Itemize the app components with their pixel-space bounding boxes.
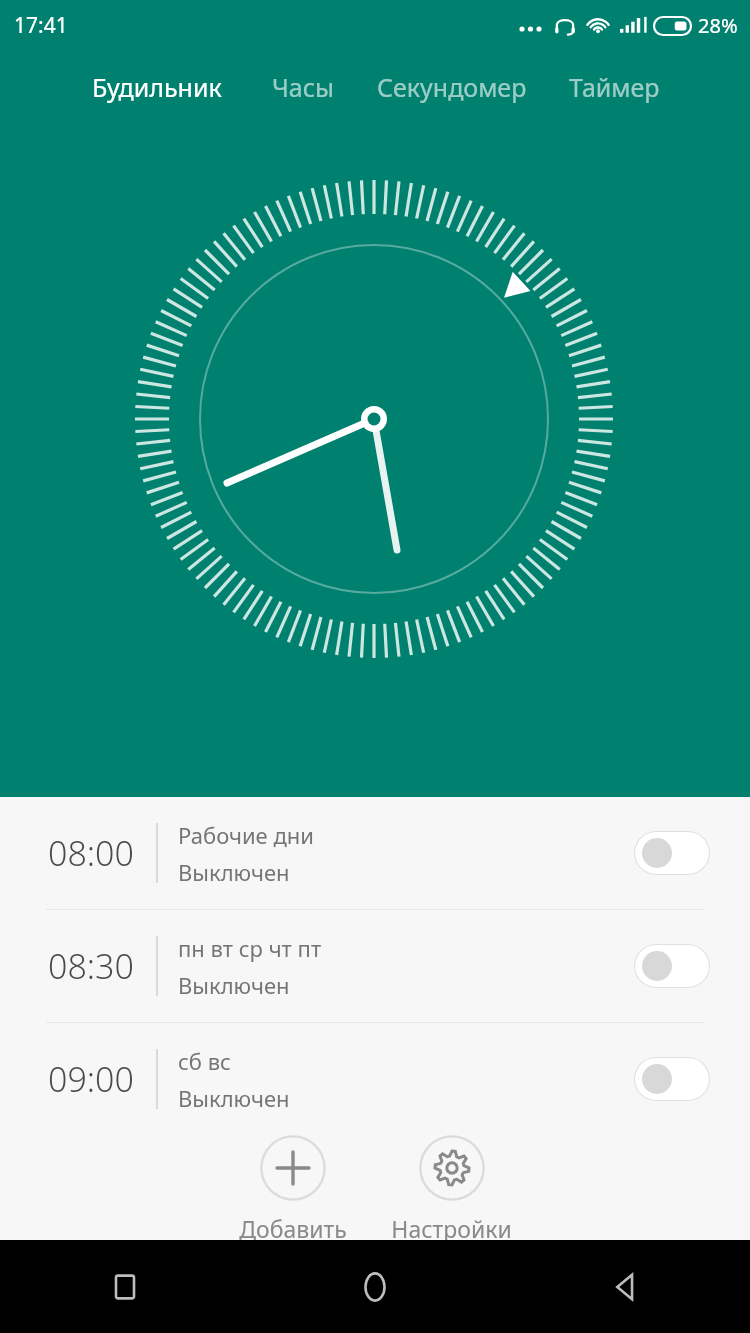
staticText: Выключен [178,970,290,1000]
staticText: Секундомер [377,70,527,104]
button[interactable]: Секундомер [373,64,531,110]
button[interactable]: 08:30 [0,910,750,1022]
button[interactable]: 08:00 [0,797,750,909]
staticText: 28% [698,12,738,39]
button[interactable]: Настройки [391,1135,512,1240]
staticText: Таймер [569,70,660,104]
staticText: Будильник [92,70,222,104]
staticText: 08:30 [48,943,134,989]
button[interactable]: 09:00 [0,1023,750,1135]
staticText: Выключен [178,1083,290,1113]
button[interactable]: Back [500,1240,750,1333]
staticText: 08:00 [48,830,134,876]
staticText: 09:00 [48,1056,134,1102]
staticText: Часы [272,70,335,104]
button[interactable]: Таймер [565,64,664,110]
staticText: пн вт ср чт пт [178,933,322,963]
button[interactable]: Recents [0,1240,250,1333]
button[interactable]: Будильник [88,64,226,110]
button[interactable]: Добавить [239,1135,347,1240]
button[interactable]: Toggle alarm [634,944,710,988]
button[interactable]: Toggle alarm [634,1057,710,1101]
staticText: 17:41 [14,11,68,40]
button[interactable]: Home [250,1240,500,1333]
staticText: сб вс [178,1046,231,1076]
staticText: Добавить [239,1213,347,1240]
staticText: Настройки [391,1213,512,1240]
staticText: Рабочие дни [178,820,314,850]
button[interactable]: Toggle alarm [634,831,710,875]
staticText: Выключен [178,857,290,887]
button[interactable]: Часы [268,64,339,110]
